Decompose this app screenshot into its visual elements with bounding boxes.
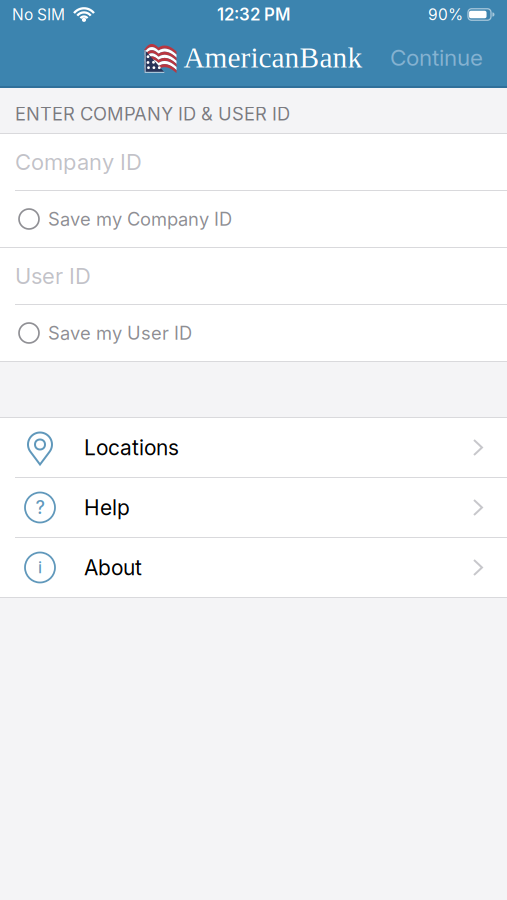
button[interactable]: Continue [390,44,483,71]
staticText: Locations [84,435,179,460]
staticText: Save my User ID [48,322,192,344]
staticText: No SIM [12,5,65,24]
button[interactable]: User ID [0,248,507,304]
staticText: 90% [428,5,463,24]
button[interactable]: Save my User ID [0,305,507,361]
button[interactable]: Locations [0,418,507,477]
button[interactable]: Company ID [0,134,507,190]
button[interactable]: i [0,538,507,597]
staticText: ENTER COMPANY ID & USER ID [15,103,290,125]
staticText: 12:32 PM [217,4,290,25]
button[interactable]: ? [0,478,507,537]
staticText: Continue [390,44,483,71]
staticText: ? [35,497,44,518]
staticText: i [38,558,42,577]
staticText: Company ID [15,149,142,175]
staticText: AmericanBank [183,41,362,74]
staticText: User ID [15,263,91,289]
button[interactable]: Save my Company ID [0,191,507,247]
staticText: About [84,555,142,580]
staticText: Help [84,495,130,520]
staticText: Save my Company ID [48,208,232,230]
